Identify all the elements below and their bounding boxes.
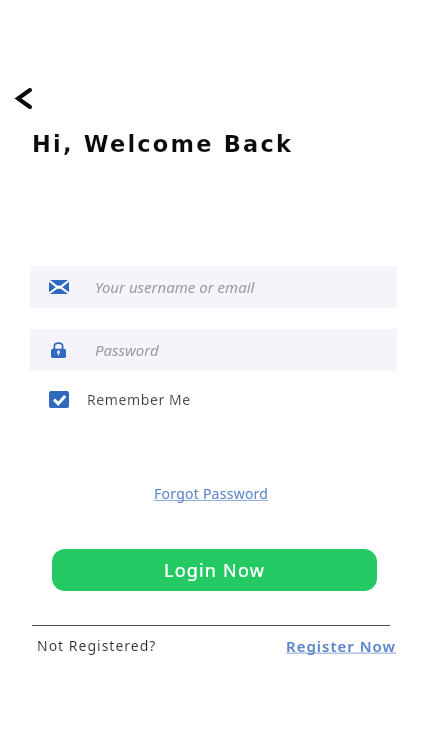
button[interactable]: Remember Me <box>45 386 195 413</box>
staticText: Your username or email <box>95 277 255 297</box>
button[interactable]: Forgot Password <box>150 482 273 505</box>
staticText: Not Registered? <box>37 636 157 655</box>
button[interactable]: Login Now <box>52 549 377 591</box>
staticText: Hi, Welcome Back <box>32 131 294 157</box>
button[interactable]: Back <box>6 80 42 116</box>
staticText: Login Now <box>164 558 265 583</box>
staticText: Forgot Password <box>154 484 269 503</box>
button[interactable]: Register Now <box>282 634 401 658</box>
staticText: Register Now <box>286 636 397 656</box>
button[interactable]: Not Registered? <box>33 634 161 657</box>
staticText: Password <box>95 340 159 360</box>
staticText: Remember Me <box>87 390 191 409</box>
button[interactable]: Username or email <box>30 266 397 308</box>
button[interactable]: Password <box>30 329 397 371</box>
